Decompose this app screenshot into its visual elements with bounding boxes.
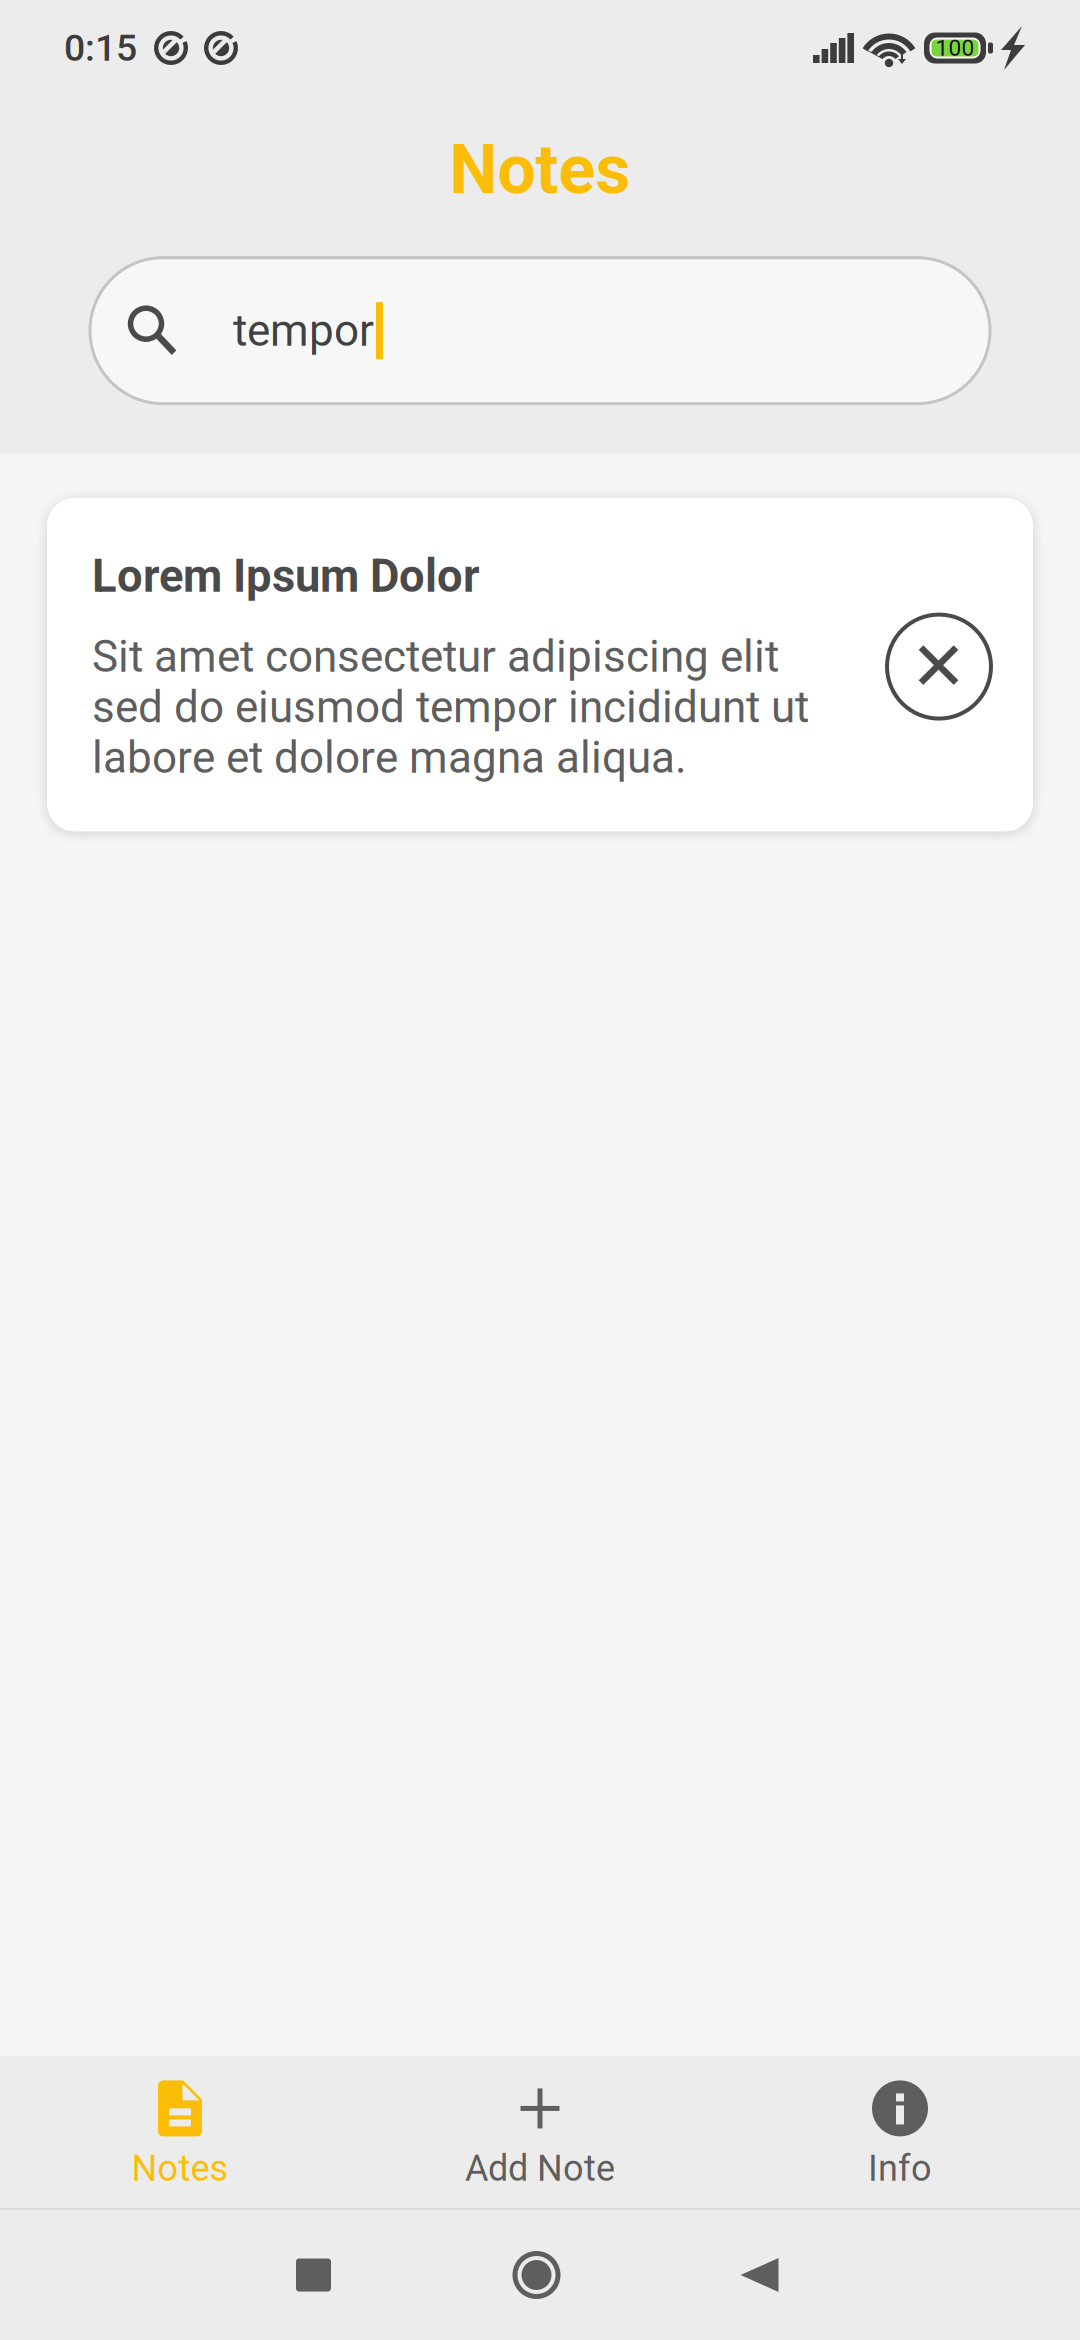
button[interactable]: Add Note [360, 2053, 720, 2211]
button[interactable]: Back [648, 2210, 871, 2340]
staticText: Notes [131, 2147, 228, 2190]
staticText: Sit amet consectetur adipiscing elit sed… [92, 631, 809, 783]
staticText: Lorem Ipsum Dolor [92, 550, 480, 603]
button[interactable]: Home [425, 2210, 648, 2340]
button[interactable]: Info [720, 2053, 1080, 2211]
staticText: tempor [233, 305, 374, 356]
button[interactable]: Notes [0, 2053, 360, 2211]
button[interactable]: tempor [90, 258, 990, 404]
staticText: 0:15 [64, 26, 137, 70]
staticText: Add Note [465, 2147, 615, 2190]
staticText: Info [868, 2147, 932, 2190]
staticText: 100 [935, 35, 974, 61]
button[interactable]: Recent apps [202, 2210, 425, 2340]
staticText: Notes [449, 130, 630, 210]
button[interactable]: Delete note [885, 613, 993, 721]
